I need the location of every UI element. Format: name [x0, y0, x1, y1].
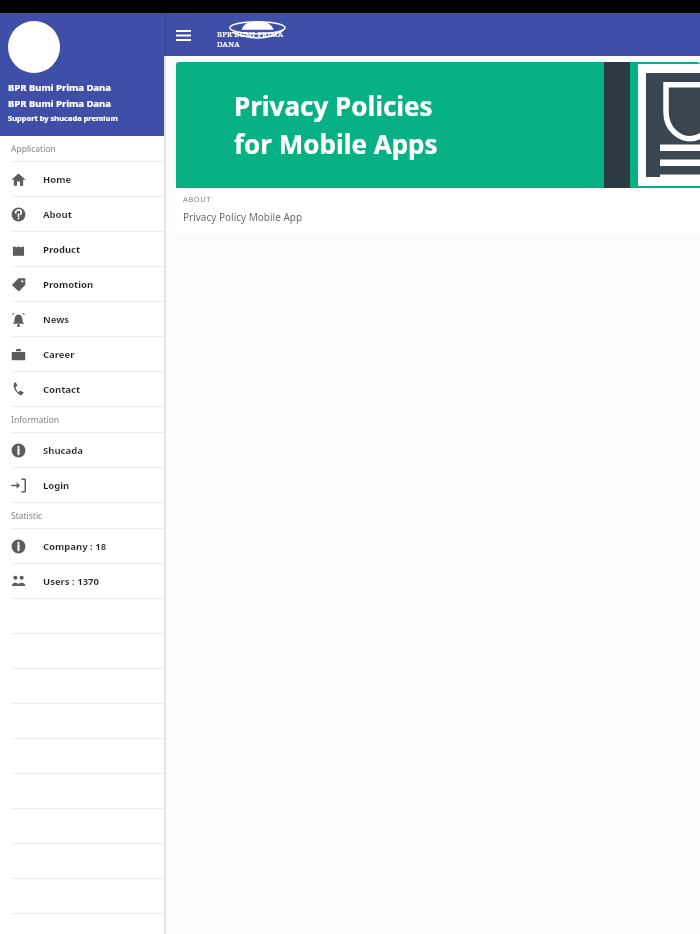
staticText: BPR Bumi Prima Dana	[8, 81, 111, 94]
staticText: Users : 1370	[43, 575, 99, 588]
button[interactable]: Open navigation menu	[164, 16, 202, 54]
button[interactable]: Login	[0, 468, 164, 502]
button[interactable]: Contact	[0, 372, 164, 406]
staticText: Privacy Policy Mobile App	[183, 210, 303, 224]
staticText: Support by shucada premium	[8, 113, 118, 123]
staticText: BPR BUMI PRIMA DANA	[217, 29, 308, 49]
staticText: Home	[43, 173, 72, 186]
staticText: Promotion	[43, 278, 94, 291]
staticText: Product	[43, 243, 81, 256]
staticText: Contact	[43, 383, 81, 396]
staticText: Information	[11, 414, 60, 426]
button[interactable]: News	[0, 302, 164, 336]
staticText: ABOUT	[183, 194, 212, 204]
button[interactable]: BPR Bumi Prima Dana	[0, 13, 164, 136]
button[interactable]: Career	[0, 337, 164, 371]
button[interactable]: Home	[0, 162, 164, 196]
button[interactable]: Product	[0, 232, 164, 266]
staticText: About	[43, 208, 72, 221]
staticText: Career	[43, 348, 75, 361]
staticText: News	[43, 313, 70, 326]
button[interactable]: Shucada	[0, 433, 164, 467]
button[interactable]: Privacy Policies	[176, 62, 700, 235]
button[interactable]: BPR Bumi Prima Dana logo	[216, 15, 308, 55]
staticText: BPR Bumi Prima Dana	[8, 97, 111, 110]
staticText: Statistic	[11, 510, 43, 522]
staticText: Application	[11, 143, 56, 155]
button[interactable]: Company : 18	[0, 529, 164, 563]
staticText: for Mobile Apps	[234, 126, 438, 161]
button[interactable]: Users : 1370	[0, 564, 164, 598]
staticText: Login	[43, 479, 70, 492]
staticText: Privacy Policies	[234, 88, 433, 123]
staticText: Shucada	[43, 444, 83, 457]
button[interactable]: Promotion	[0, 267, 164, 301]
staticText: Company : 18	[43, 540, 107, 553]
button[interactable]: About	[0, 197, 164, 231]
